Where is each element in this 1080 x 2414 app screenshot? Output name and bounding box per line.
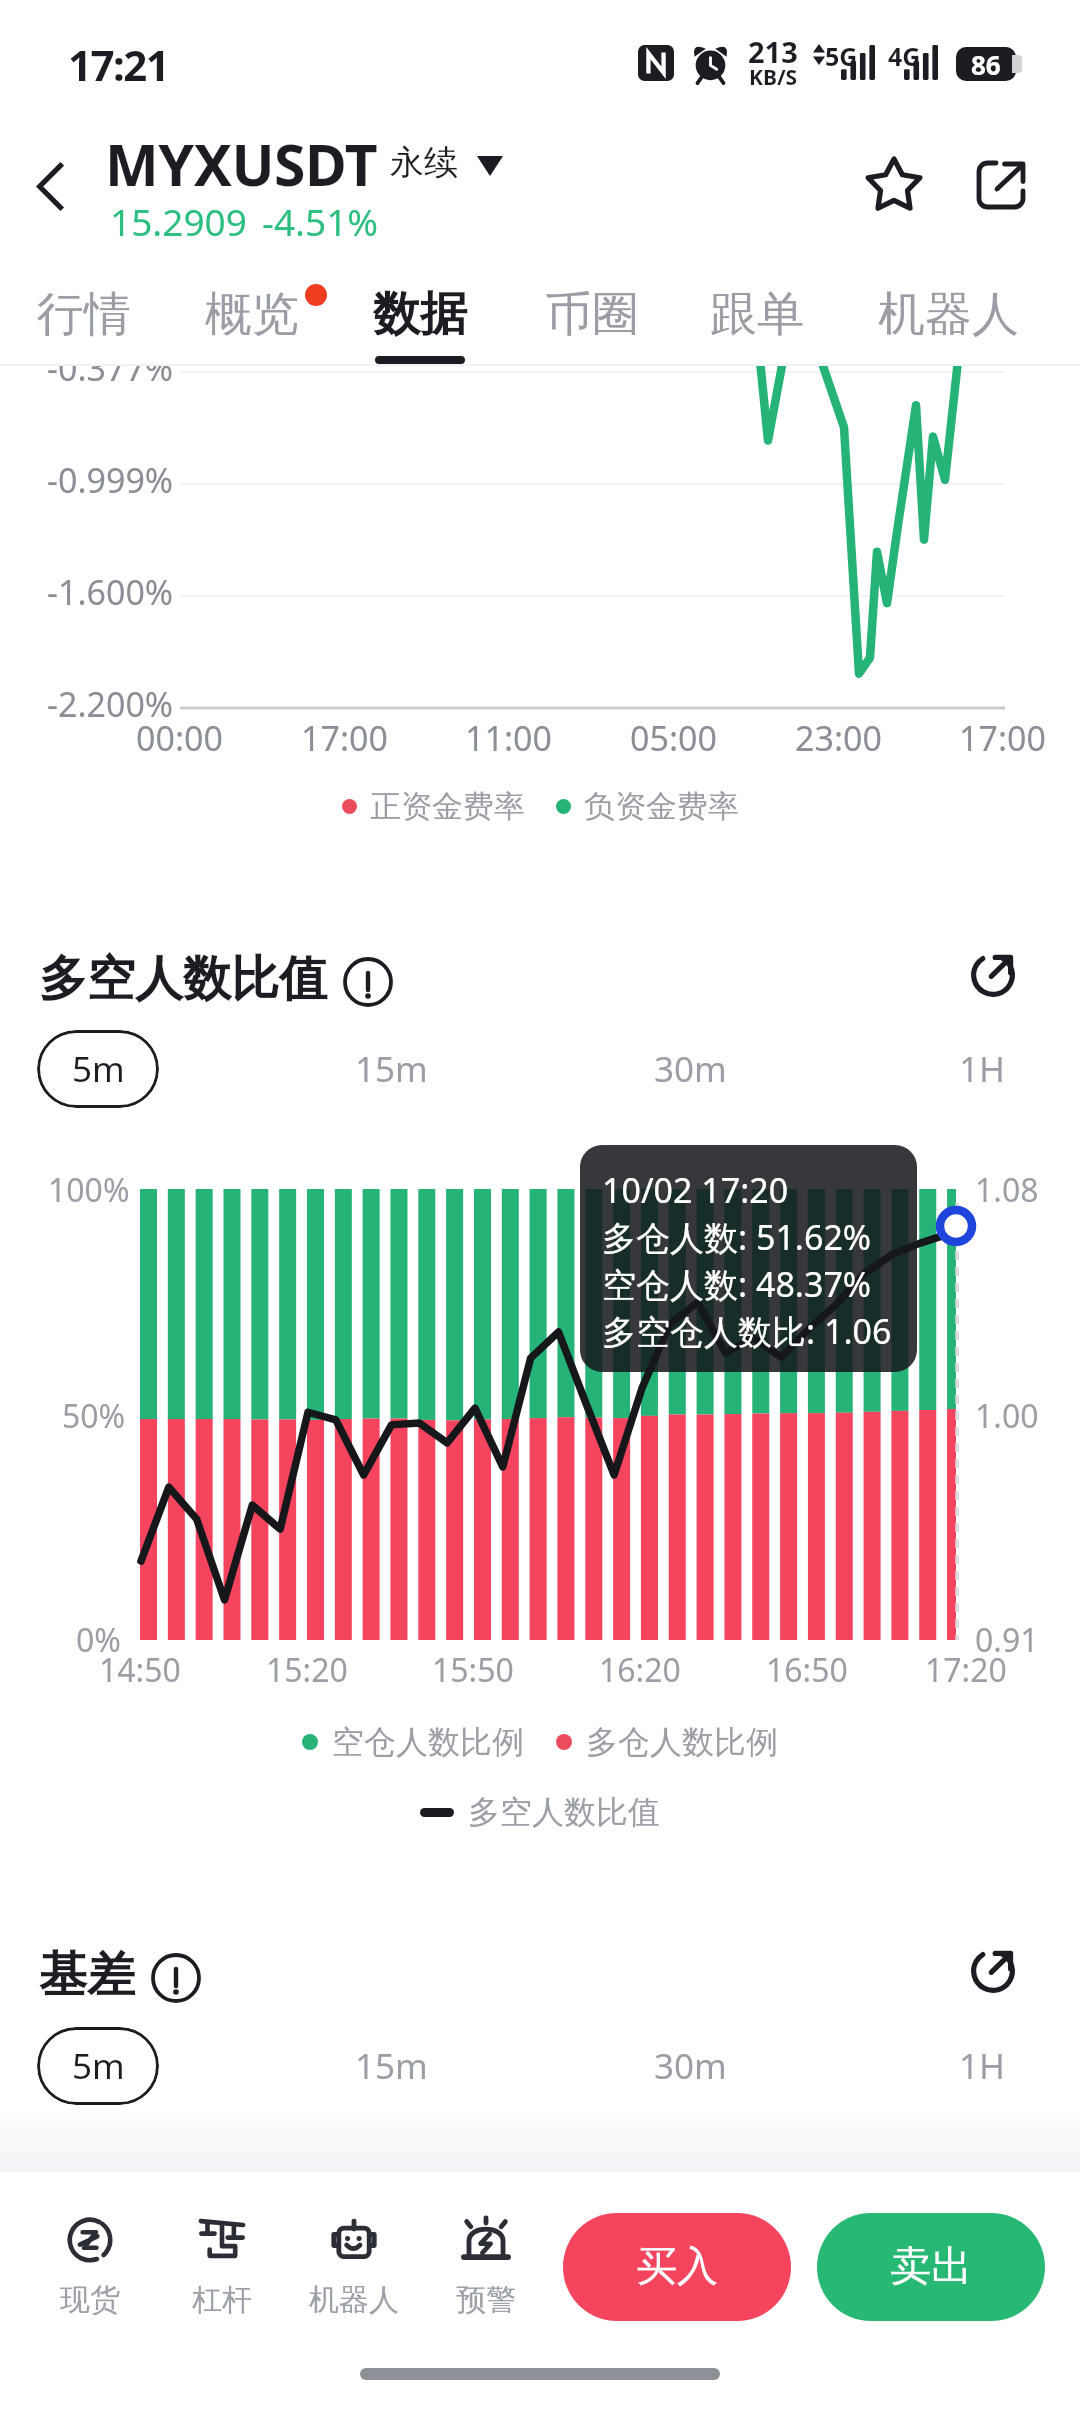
staticText: 卖出	[890, 2241, 972, 2293]
button[interactable]: 机器人	[290, 2213, 418, 2321]
staticText: 30m	[654, 1045, 727, 1093]
staticText: -0.377%	[47, 345, 174, 391]
button[interactable]: 30m	[629, 1030, 751, 1108]
staticText: 0.91	[975, 1618, 1039, 1662]
staticText: -4.51%	[262, 196, 379, 246]
button[interactable]: Favorite	[851, 142, 937, 228]
button[interactable]: 30m	[629, 2027, 751, 2105]
staticText: 行情	[37, 285, 131, 344]
staticText: 负资金费率	[584, 787, 739, 826]
staticText: 17:00	[301, 715, 388, 761]
staticText: 17:00	[959, 715, 1046, 761]
button[interactable]: 预警	[422, 2213, 550, 2321]
staticText: 币圈	[545, 285, 639, 344]
staticText: 正资金费率	[370, 787, 525, 826]
button[interactable]: 概览	[204, 272, 300, 368]
staticText: 5m	[72, 1045, 125, 1093]
staticText: 机器人	[309, 2281, 399, 2319]
button[interactable]: 1H	[921, 1030, 1043, 1108]
staticText: 杠杆	[192, 2281, 252, 2319]
staticText: 50%	[62, 1394, 126, 1438]
staticText: 14:50	[99, 1648, 181, 1692]
staticText: 15m	[355, 2042, 428, 2090]
button[interactable]: 卖出	[817, 2213, 1045, 2321]
staticText: 15.2909	[110, 196, 247, 246]
staticText: 11:00	[465, 715, 552, 761]
button[interactable]: 15m	[330, 2027, 452, 2105]
staticText: 机器人	[878, 285, 1019, 344]
staticText: 数据	[373, 285, 467, 344]
staticText: 概览	[205, 285, 299, 344]
button[interactable]: Open full screen chart	[955, 1933, 1031, 2009]
staticText: -1.600%	[47, 569, 174, 615]
staticText: 1H	[959, 1045, 1005, 1093]
button[interactable]: 现货	[26, 2213, 154, 2321]
staticText: 多仓人数: 51.62%	[602, 1214, 872, 1260]
button[interactable]: Open full screen chart	[955, 937, 1031, 1013]
staticText: 15:50	[432, 1648, 514, 1692]
staticText: 多空人数比值	[39, 949, 327, 1009]
button[interactable]: Share	[959, 143, 1043, 227]
staticText: 86	[971, 47, 1001, 81]
staticText: 1.08	[975, 1168, 1039, 1212]
staticText: 多仓人数比例	[586, 1722, 778, 1762]
staticText: 基差	[39, 1945, 135, 2005]
staticText: 16:50	[766, 1648, 848, 1692]
staticText: 多空仓人数比: 1.06	[602, 1308, 892, 1354]
staticText: 1H	[959, 2042, 1005, 2090]
staticText: 5m	[72, 2042, 125, 2090]
button[interactable]: 币圈	[544, 272, 640, 368]
button[interactable]: 5m	[37, 1030, 159, 1108]
staticText: 00:00	[136, 715, 223, 761]
button[interactable]: 买入	[563, 2213, 791, 2321]
staticText: 空仓人数比例	[332, 1722, 524, 1762]
staticText: MYXUSDT	[105, 125, 378, 203]
staticText: 空仓人数: 48.37%	[602, 1261, 872, 1307]
staticText: 4G	[888, 39, 921, 73]
staticText: -0.999%	[47, 457, 174, 503]
button[interactable]: 杠杆	[158, 2213, 286, 2321]
button[interactable]: 跟单	[709, 272, 805, 368]
staticText: 16:20	[599, 1648, 681, 1692]
staticText: 15m	[355, 1045, 428, 1093]
staticText: 05:00	[630, 715, 717, 761]
staticText: 永续	[390, 141, 458, 184]
button[interactable]: 1H	[921, 2027, 1043, 2105]
staticText: 15:20	[266, 1648, 348, 1692]
staticText: 23:00	[795, 715, 882, 761]
staticText: 213	[748, 32, 798, 71]
staticText: 多空人数比值	[468, 1792, 660, 1832]
staticText: 买入	[636, 2241, 718, 2293]
button[interactable]: 行情	[36, 272, 132, 368]
staticText: -2.200%	[47, 681, 174, 727]
staticText: 10/02 17:20	[602, 1167, 789, 1213]
staticText: 跟单	[710, 285, 804, 344]
staticText: 0%	[76, 1618, 121, 1662]
staticText: 1.00	[975, 1394, 1039, 1438]
staticText: 预警	[456, 2281, 516, 2319]
button[interactable]: 机器人	[876, 272, 1020, 368]
staticText: KB/S	[749, 63, 798, 92]
staticText: 30m	[654, 2042, 727, 2090]
button[interactable]: Back	[8, 144, 92, 228]
staticText: 17:21	[68, 36, 169, 93]
staticText: 100%	[48, 1168, 130, 1212]
staticText: 17:20	[925, 1648, 1007, 1692]
button[interactable]: 数据	[372, 272, 468, 368]
button[interactable]: 5m	[37, 2027, 159, 2105]
staticText: 现货	[60, 2281, 120, 2319]
button[interactable]: 15m	[330, 1030, 452, 1108]
staticText: 5G	[825, 39, 858, 73]
